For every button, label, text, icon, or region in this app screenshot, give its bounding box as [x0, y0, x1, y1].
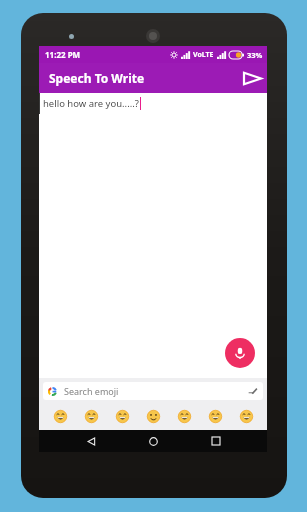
button[interactable]: Emoji: [174, 406, 194, 426]
button[interactable]: Send: [237, 63, 267, 93]
button[interactable]: hello how are you.....?: [39, 93, 267, 114]
button[interactable]: Emoji: [50, 406, 70, 426]
staticText: hello how are you.....?: [43, 97, 139, 110]
staticText: 33%: [247, 50, 263, 60]
button[interactable]: Start voice input: [225, 338, 255, 368]
button[interactable]: Emoji: [236, 406, 256, 426]
button[interactable]: Recent apps: [205, 430, 227, 452]
button[interactable]: Emoji: [81, 406, 101, 426]
button[interactable]: Search emoji: [43, 382, 263, 400]
staticText: 11:22 PM: [45, 49, 81, 60]
button[interactable]: Emoji: [112, 406, 132, 426]
button[interactable]: Emoji: [205, 406, 225, 426]
staticText: Search emoji: [64, 385, 247, 397]
button[interactable]: Home: [142, 430, 164, 452]
button[interactable]: Emoji: [143, 406, 163, 426]
staticText: Speech To Write: [49, 70, 237, 86]
button[interactable]: Back: [80, 430, 102, 452]
staticText: VoLTE: [193, 50, 214, 60]
